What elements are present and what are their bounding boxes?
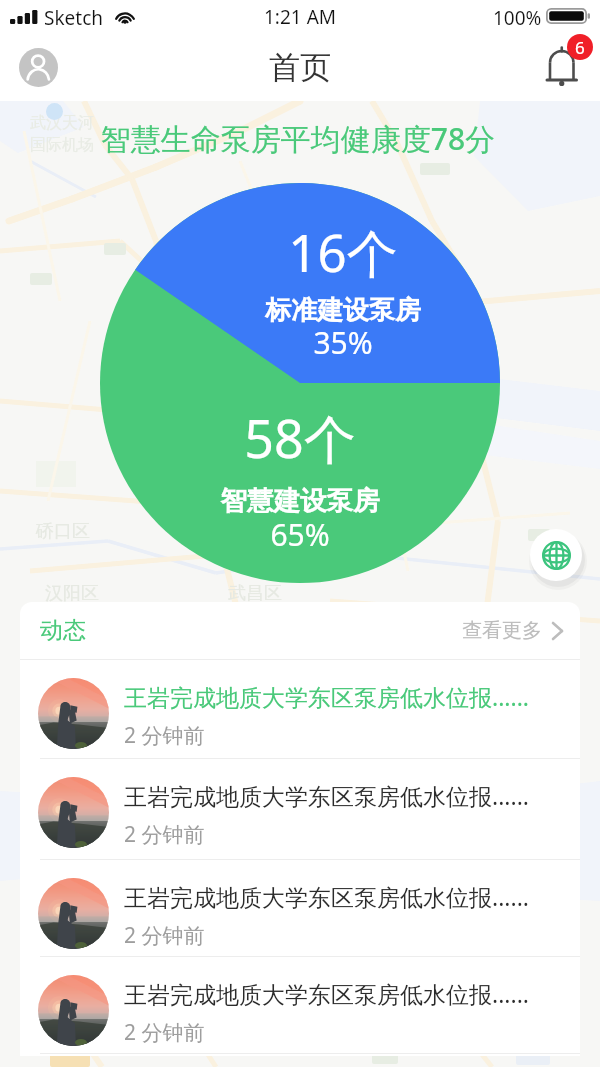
staticText: 标准建设泵房 bbox=[143, 294, 543, 327]
staticText: 首页 bbox=[269, 48, 331, 87]
button[interactable]: 动态 bbox=[20, 602, 580, 659]
button[interactable]: 王岩完成地质大学东区泵房低水位报...... bbox=[20, 759, 580, 859]
staticText: 35% bbox=[143, 322, 543, 363]
staticText: 查看更多 bbox=[462, 618, 542, 643]
staticText: 2 分钟前 bbox=[124, 721, 205, 750]
staticText: 王岩完成地质大学东区泵房低水位报...... bbox=[124, 681, 529, 712]
staticText: 智慧建设泵房 bbox=[100, 484, 500, 517]
staticText: 65% bbox=[100, 514, 500, 555]
staticText: 王岩完成地质大学东区泵房低水位报...... bbox=[124, 780, 529, 811]
staticText: 2 分钟前 bbox=[124, 921, 205, 950]
staticText: 6 bbox=[575, 36, 585, 59]
button[interactable]: Profile bbox=[19, 48, 58, 87]
button[interactable]: 王岩完成地质大学东区泵房低水位报...... bbox=[20, 660, 580, 758]
staticText: 2 分钟前 bbox=[124, 820, 205, 849]
staticText: 58个 bbox=[100, 402, 500, 473]
staticText: 汉阳区 bbox=[45, 582, 99, 605]
button[interactable]: Notifications bbox=[543, 43, 583, 83]
button[interactable]: 王岩完成地质大学东区泵房低水位报...... bbox=[20, 860, 580, 956]
staticText: Sketch bbox=[44, 5, 104, 31]
staticText: 王岩完成地质大学东区泵房低水位报...... bbox=[124, 881, 529, 912]
staticText: 硚口区 bbox=[36, 520, 90, 543]
staticText: 动态 bbox=[40, 616, 86, 645]
staticText: 智慧生命泵房平均健康度78分 bbox=[0, 118, 598, 159]
staticText: 16个 bbox=[143, 217, 543, 287]
staticText: 2 分钟前 bbox=[124, 1018, 205, 1047]
staticText: 武昌区 bbox=[228, 582, 282, 605]
staticText: 100% bbox=[493, 5, 542, 31]
button[interactable]: Map layers bbox=[530, 529, 582, 581]
staticText: 王岩完成地质大学东区泵房低水位报...... bbox=[124, 978, 529, 1009]
staticText: 汉施大道 bbox=[302, 339, 362, 358]
staticText: 1:21 AM bbox=[264, 4, 337, 30]
staticText: 武汉天河 国际机场 bbox=[30, 113, 94, 155]
button[interactable]: 王岩完成地质大学东区泵房低水位报...... bbox=[20, 957, 580, 1053]
